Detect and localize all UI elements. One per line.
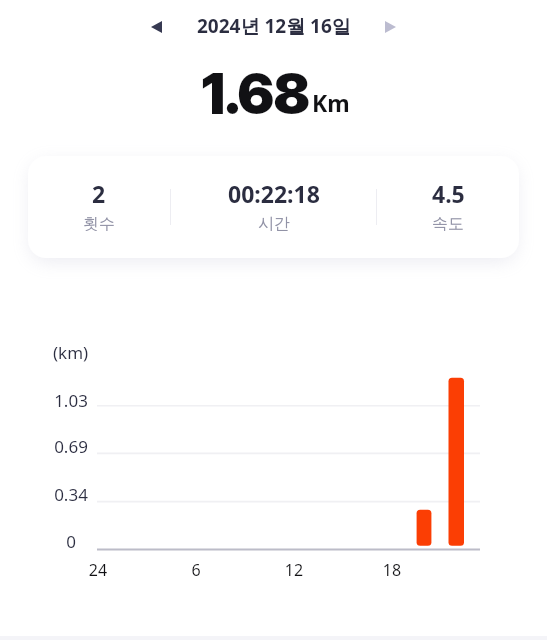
staticText: 1.68 — [202, 60, 310, 128]
staticText: 0 — [41, 530, 101, 553]
staticText: 00:22:18 — [228, 178, 320, 209]
button[interactable]: 00:22:18 — [171, 156, 376, 258]
staticText: 24 — [73, 559, 123, 581]
button[interactable]: 4.5 — [377, 156, 519, 258]
button[interactable]: Next day — [373, 10, 407, 44]
staticText: 0.34 — [41, 483, 101, 506]
staticText: 12 — [269, 559, 319, 581]
staticText: 4.5 — [432, 178, 465, 209]
staticText: 횟수 — [83, 214, 115, 234]
staticText: (km) — [53, 341, 89, 364]
staticText: 6 — [171, 559, 221, 581]
staticText: 18 — [367, 559, 417, 581]
staticText: 2024년 12월 16일 — [197, 13, 351, 39]
button[interactable]: 2 — [28, 156, 170, 258]
staticText: 시간 — [258, 214, 290, 234]
button[interactable]: Previous day — [139, 10, 173, 44]
staticText: Km — [312, 87, 350, 118]
staticText: 1.03 — [41, 389, 101, 412]
staticText: 2 — [92, 178, 106, 209]
staticText: 속도 — [432, 214, 464, 234]
staticText: 0.69 — [41, 435, 101, 458]
